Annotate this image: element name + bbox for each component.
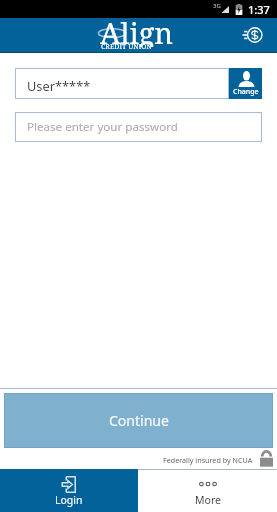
staticText: Align: [100, 13, 174, 47]
button[interactable]: Rates: [239, 21, 267, 49]
staticText: Federally insured by NCUA: [163, 455, 253, 465]
button[interactable]: More: [138, 469, 277, 512]
staticText: CREDIT UNION: [101, 42, 152, 51]
button[interactable]: User*****: [15, 68, 229, 99]
button[interactable]: Please enter your password: [15, 112, 262, 142]
staticText: Change: [233, 87, 259, 97]
staticText: Login: [55, 493, 83, 507]
staticText: Please enter your password: [27, 119, 178, 135]
staticText: More: [195, 493, 221, 507]
staticText: 1:37: [248, 2, 270, 17]
staticText: Continue: [109, 411, 169, 430]
staticText: 3G: [213, 2, 221, 10]
button[interactable]: Continue: [4, 393, 273, 448]
staticText: User*****: [27, 77, 91, 94]
button[interactable]: Change: [229, 68, 262, 99]
button[interactable]: Login: [0, 469, 138, 512]
